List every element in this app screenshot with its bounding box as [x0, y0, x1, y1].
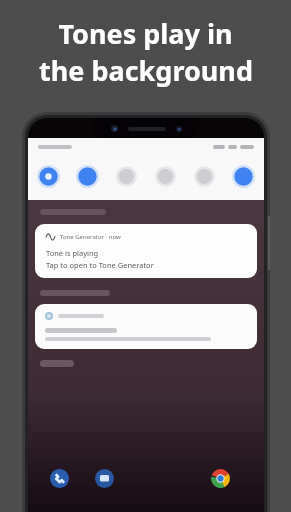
button[interactable]: Bluetooth — [74, 163, 101, 190]
button[interactable]: Messages — [95, 469, 114, 488]
button[interactable]: Wi-Fi — [35, 163, 62, 190]
staticText: Tones play in — [58, 15, 233, 52]
staticText: Tone is playing — [46, 248, 99, 258]
button[interactable]: Chrome — [211, 469, 230, 488]
button[interactable] — [35, 304, 257, 349]
button[interactable]: Auto rotate — [191, 163, 218, 190]
staticText: Tone Generator · now — [60, 233, 121, 241]
button[interactable]: Battery saver — [230, 163, 257, 190]
button[interactable]: Do not disturb — [113, 163, 140, 190]
button[interactable]: Tone Generator · now — [35, 224, 257, 278]
button[interactable]: Flashlight — [152, 163, 179, 190]
button[interactable]: Phone — [50, 469, 69, 488]
staticText: Tap to open to Tone Generator — [46, 260, 154, 270]
staticText: the background — [39, 52, 253, 89]
